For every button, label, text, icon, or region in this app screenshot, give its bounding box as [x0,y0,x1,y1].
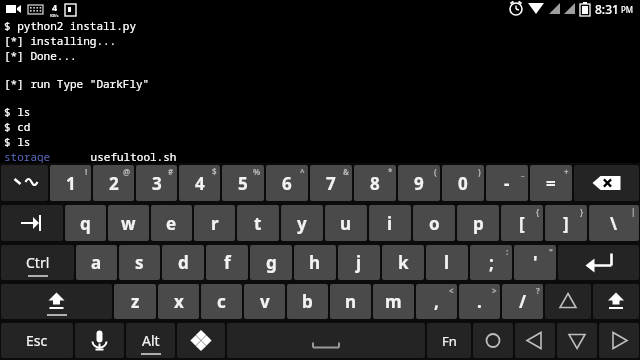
staticText: $ [212,166,217,177]
button[interactable]: l [426,245,468,280]
staticText: % [253,166,261,177]
staticText: _ [521,166,525,177]
button[interactable]: / [502,284,543,319]
button[interactable]: d [162,245,204,280]
button[interactable]: Switch keyboard [177,323,225,358]
staticText: 2 [109,172,119,195]
button[interactable]: Shift [593,284,639,319]
staticText: , [434,290,439,313]
button[interactable]: t [237,205,279,241]
button[interactable]: k [382,245,424,280]
button[interactable]: Fn [427,323,471,358]
button[interactable]: 3 [136,165,177,201]
staticText: < [449,285,454,296]
button[interactable]: f [206,245,248,280]
button[interactable]: o [413,205,455,241]
staticText: 8:31 [595,1,619,17]
button[interactable]: , [416,284,457,319]
staticText: o [429,212,440,235]
button[interactable]: j [338,245,380,280]
button[interactable]: 4 [179,165,220,201]
staticText: 4 [52,1,58,13]
button[interactable]: b [287,284,328,319]
staticText: storage [4,149,51,163]
button[interactable]: - [486,165,528,201]
button[interactable]: m [373,284,414,319]
button[interactable]: q [65,205,106,241]
button[interactable]: [ [501,205,543,241]
button[interactable]: Up [545,284,591,319]
staticText: 4 [195,172,205,195]
button[interactable]: Tab [1,205,63,241]
button[interactable]: Space [227,323,425,358]
button[interactable]: u [325,205,367,241]
button[interactable]: Esc [1,323,73,358]
button[interactable]: s [119,245,160,280]
staticText: j [356,251,362,274]
button[interactable]: h [294,245,336,280]
staticText: f [224,251,231,274]
button[interactable]: ' [514,245,556,280]
staticText: = [546,172,556,195]
staticText: " [549,246,553,257]
staticText: { [536,206,540,217]
staticText: Fn [442,332,457,350]
button[interactable]: p [457,205,499,241]
button[interactable]: Voice input [75,323,124,358]
button[interactable]: 8 [354,165,396,201]
staticText: q [80,212,91,235]
button[interactable]: Left [515,323,555,358]
button[interactable]: a [76,245,117,280]
staticText: [*] Done... [4,48,77,63]
button[interactable]: g [250,245,292,280]
staticText: Esc [26,331,48,350]
staticText: b [302,290,313,313]
staticText: h [309,251,321,274]
staticText: \ [610,212,618,235]
button[interactable]: 7 [310,165,352,201]
button[interactable]: 0 [442,165,484,201]
button[interactable]: Backspace [574,165,639,201]
button[interactable]: Down [557,323,597,358]
button[interactable]: Enter [558,245,639,280]
staticText: . [477,290,482,313]
button[interactable]: Home [473,323,513,358]
button[interactable]: ] [545,205,587,241]
button[interactable]: 6 [266,165,308,201]
staticText: * [388,166,393,177]
staticText: ? [536,285,540,296]
button[interactable]: n [330,284,371,319]
button[interactable] [1,165,48,201]
button[interactable]: w [108,205,149,241]
button[interactable]: x [158,284,199,319]
button[interactable]: 5 [222,165,264,201]
button[interactable]: z [114,284,156,319]
button[interactable]: 9 [398,165,440,201]
staticText: k [398,251,409,274]
button[interactable]: . [459,284,500,319]
button[interactable]: i [369,205,411,241]
staticText: $ python2 install.py [4,18,136,33]
button[interactable]: 1 [50,165,91,201]
button[interactable]: e [151,205,192,241]
staticText: & [343,166,349,177]
staticText: Alt [142,331,160,350]
staticText: x [174,290,184,313]
staticText: i [387,212,393,235]
staticText: 3 [152,172,162,195]
button[interactable]: r [194,205,235,241]
button[interactable]: Alt [126,323,175,358]
button[interactable]: ; [470,245,512,280]
button[interactable]: \ [589,205,639,241]
button[interactable]: Right [599,323,639,358]
button[interactable]: y [281,205,323,241]
button[interactable]: c [201,284,242,319]
button[interactable]: Ctrl [1,245,74,280]
button[interactable]: 2 [93,165,134,201]
staticText: > [492,285,497,296]
button[interactable]: = [530,165,572,201]
button[interactable]: Shift [1,284,112,319]
button[interactable]: v [244,284,285,319]
staticText: d [178,251,189,274]
staticText: ) [478,166,481,177]
